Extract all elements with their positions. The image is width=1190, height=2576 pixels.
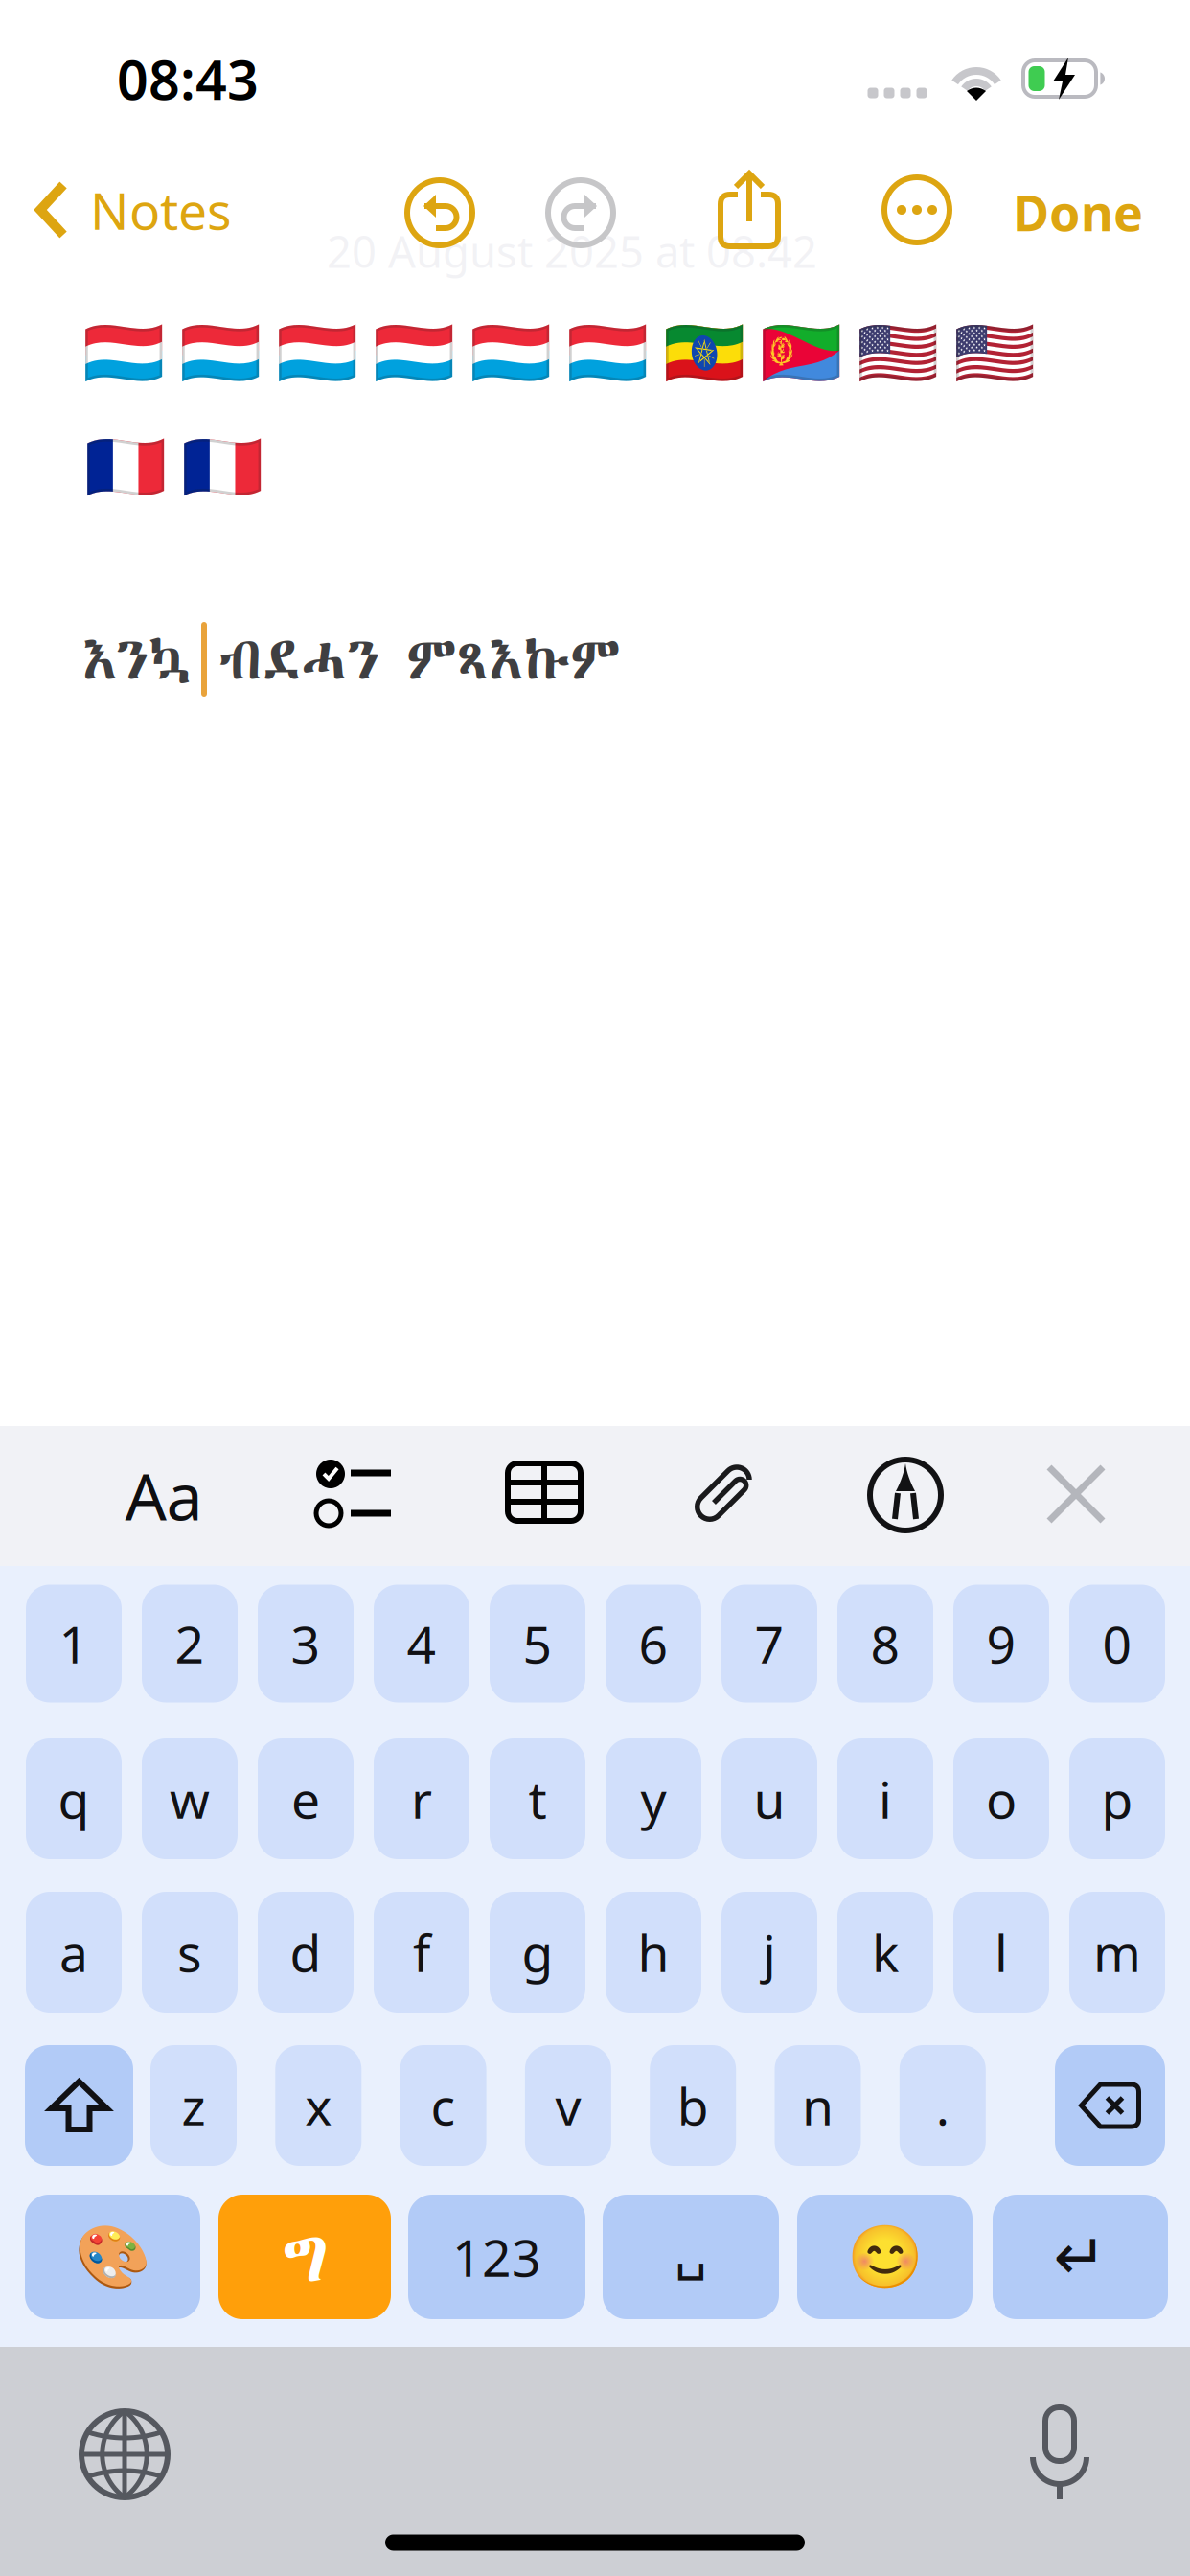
button[interactable] <box>508 1463 581 1521</box>
staticText: 123 <box>452 2223 541 2291</box>
staticText: p <box>1101 1765 1133 1833</box>
button[interactable]: ግ <box>218 2195 391 2319</box>
staticText: 🇫🇷 <box>181 429 263 505</box>
button[interactable]: l <box>953 1892 1049 2012</box>
button[interactable]: 🎨 <box>25 2195 200 2319</box>
staticText: 9 <box>986 1610 1016 1677</box>
button[interactable]: ↵ <box>993 2195 1168 2319</box>
button[interactable]: e <box>258 1738 354 1859</box>
staticText: v <box>555 2072 581 2139</box>
staticText: d <box>290 1918 321 1986</box>
staticText: 3 <box>291 1610 320 1677</box>
staticText: 😊 <box>847 2222 923 2292</box>
button[interactable]: k <box>837 1892 933 2012</box>
staticText: 08:43 <box>117 42 259 115</box>
button[interactable]: 123 <box>408 2195 585 2319</box>
staticText: e <box>291 1765 320 1833</box>
staticText: እንኳ <box>82 620 192 699</box>
button[interactable]: v <box>525 2045 611 2166</box>
staticText: u <box>754 1765 785 1833</box>
staticText: l <box>995 1918 1008 1986</box>
button[interactable]: j <box>721 1892 817 2012</box>
staticText: t <box>528 1765 547 1833</box>
button[interactable] <box>548 180 613 245</box>
staticText: 🎨 <box>74 2222 151 2292</box>
button[interactable]: p <box>1069 1738 1165 1859</box>
button[interactable]: h <box>606 1892 701 2012</box>
staticText: 8 <box>870 1610 900 1677</box>
staticText: 🇱🇺 <box>82 315 165 391</box>
staticText: x <box>305 2072 332 2139</box>
staticText: 20 August 2025 at 08:42 <box>327 222 817 280</box>
button[interactable]: m <box>1069 1892 1165 2012</box>
button[interactable]: 4 <box>374 1585 469 1702</box>
button[interactable]: 8 <box>837 1585 933 1702</box>
button[interactable]: ␣ <box>603 2195 779 2319</box>
button[interactable] <box>1055 2045 1165 2166</box>
button[interactable]: s <box>142 1892 238 2012</box>
button[interactable]: 6 <box>606 1585 701 1702</box>
button[interactable]: a <box>26 1892 122 2012</box>
staticText: Done <box>1013 179 1143 245</box>
button[interactable]: b <box>650 2045 736 2166</box>
staticText: z <box>182 2072 206 2139</box>
staticText: 🇺🇸 <box>857 315 939 391</box>
button[interactable]: 3 <box>258 1585 354 1702</box>
staticText: a <box>59 1918 88 1986</box>
button[interactable]: 9 <box>953 1585 1049 1702</box>
button[interactable] <box>1049 1467 1103 1521</box>
button[interactable]: c <box>400 2045 486 2166</box>
staticText: m <box>1093 1918 1141 1986</box>
button[interactable]: z <box>150 2045 237 2166</box>
button[interactable] <box>316 1460 391 1527</box>
staticText: Notes <box>90 176 232 244</box>
staticText: 5 <box>523 1610 552 1677</box>
button[interactable]: 0 <box>1069 1585 1165 1702</box>
button[interactable]: x <box>275 2045 362 2166</box>
button[interactable]: n <box>775 2045 861 2166</box>
staticText: 🇱🇺 <box>276 315 358 391</box>
button[interactable]: g <box>490 1892 585 2012</box>
button[interactable] <box>721 172 778 246</box>
button[interactable]: y <box>606 1738 701 1859</box>
button[interactable]: 2 <box>142 1585 238 1702</box>
staticText: ␣ <box>675 2222 707 2280</box>
staticText: c <box>431 2072 456 2139</box>
button[interactable] <box>81 2411 168 2497</box>
button[interactable]: Aa <box>125 1452 203 1538</box>
button[interactable]: Done <box>1013 179 1143 245</box>
button[interactable]: q <box>26 1738 122 1859</box>
staticText: 🇫🇷 <box>84 429 167 505</box>
button[interactable]: w <box>142 1738 238 1859</box>
button[interactable] <box>407 180 472 245</box>
staticText: 🇱🇺 <box>373 315 455 391</box>
button[interactable] <box>684 1475 767 1507</box>
button[interactable]: d <box>258 1892 354 2012</box>
staticText: j <box>763 1918 776 1986</box>
staticText: q <box>58 1765 90 1833</box>
button[interactable]: u <box>721 1738 817 1859</box>
button[interactable]: r <box>374 1738 469 1859</box>
button[interactable] <box>870 1460 941 1530</box>
button[interactable]: 😊 <box>797 2195 973 2319</box>
button[interactable]: f <box>374 1892 469 2012</box>
button[interactable] <box>25 2045 133 2166</box>
staticText: . <box>936 2072 949 2139</box>
staticText: 🇪🇷 <box>760 315 842 391</box>
staticText: r <box>411 1765 432 1833</box>
staticText: 0 <box>1102 1610 1132 1677</box>
staticText: 1 <box>59 1610 89 1677</box>
button[interactable]: 1 <box>26 1585 122 1702</box>
staticText: o <box>986 1765 1017 1833</box>
button[interactable]: 5 <box>490 1585 585 1702</box>
button[interactable]: . <box>899 2045 986 2166</box>
button[interactable] <box>884 177 950 242</box>
button[interactable] <box>1029 2407 1090 2499</box>
staticText: 🇱🇺 <box>469 315 552 391</box>
button[interactable]: t <box>490 1738 585 1859</box>
staticText: b <box>677 2072 709 2139</box>
button[interactable]: i <box>837 1738 933 1859</box>
button[interactable]: 7 <box>721 1585 817 1702</box>
button[interactable]: o <box>953 1738 1049 1859</box>
button[interactable]: Notes <box>36 176 232 244</box>
